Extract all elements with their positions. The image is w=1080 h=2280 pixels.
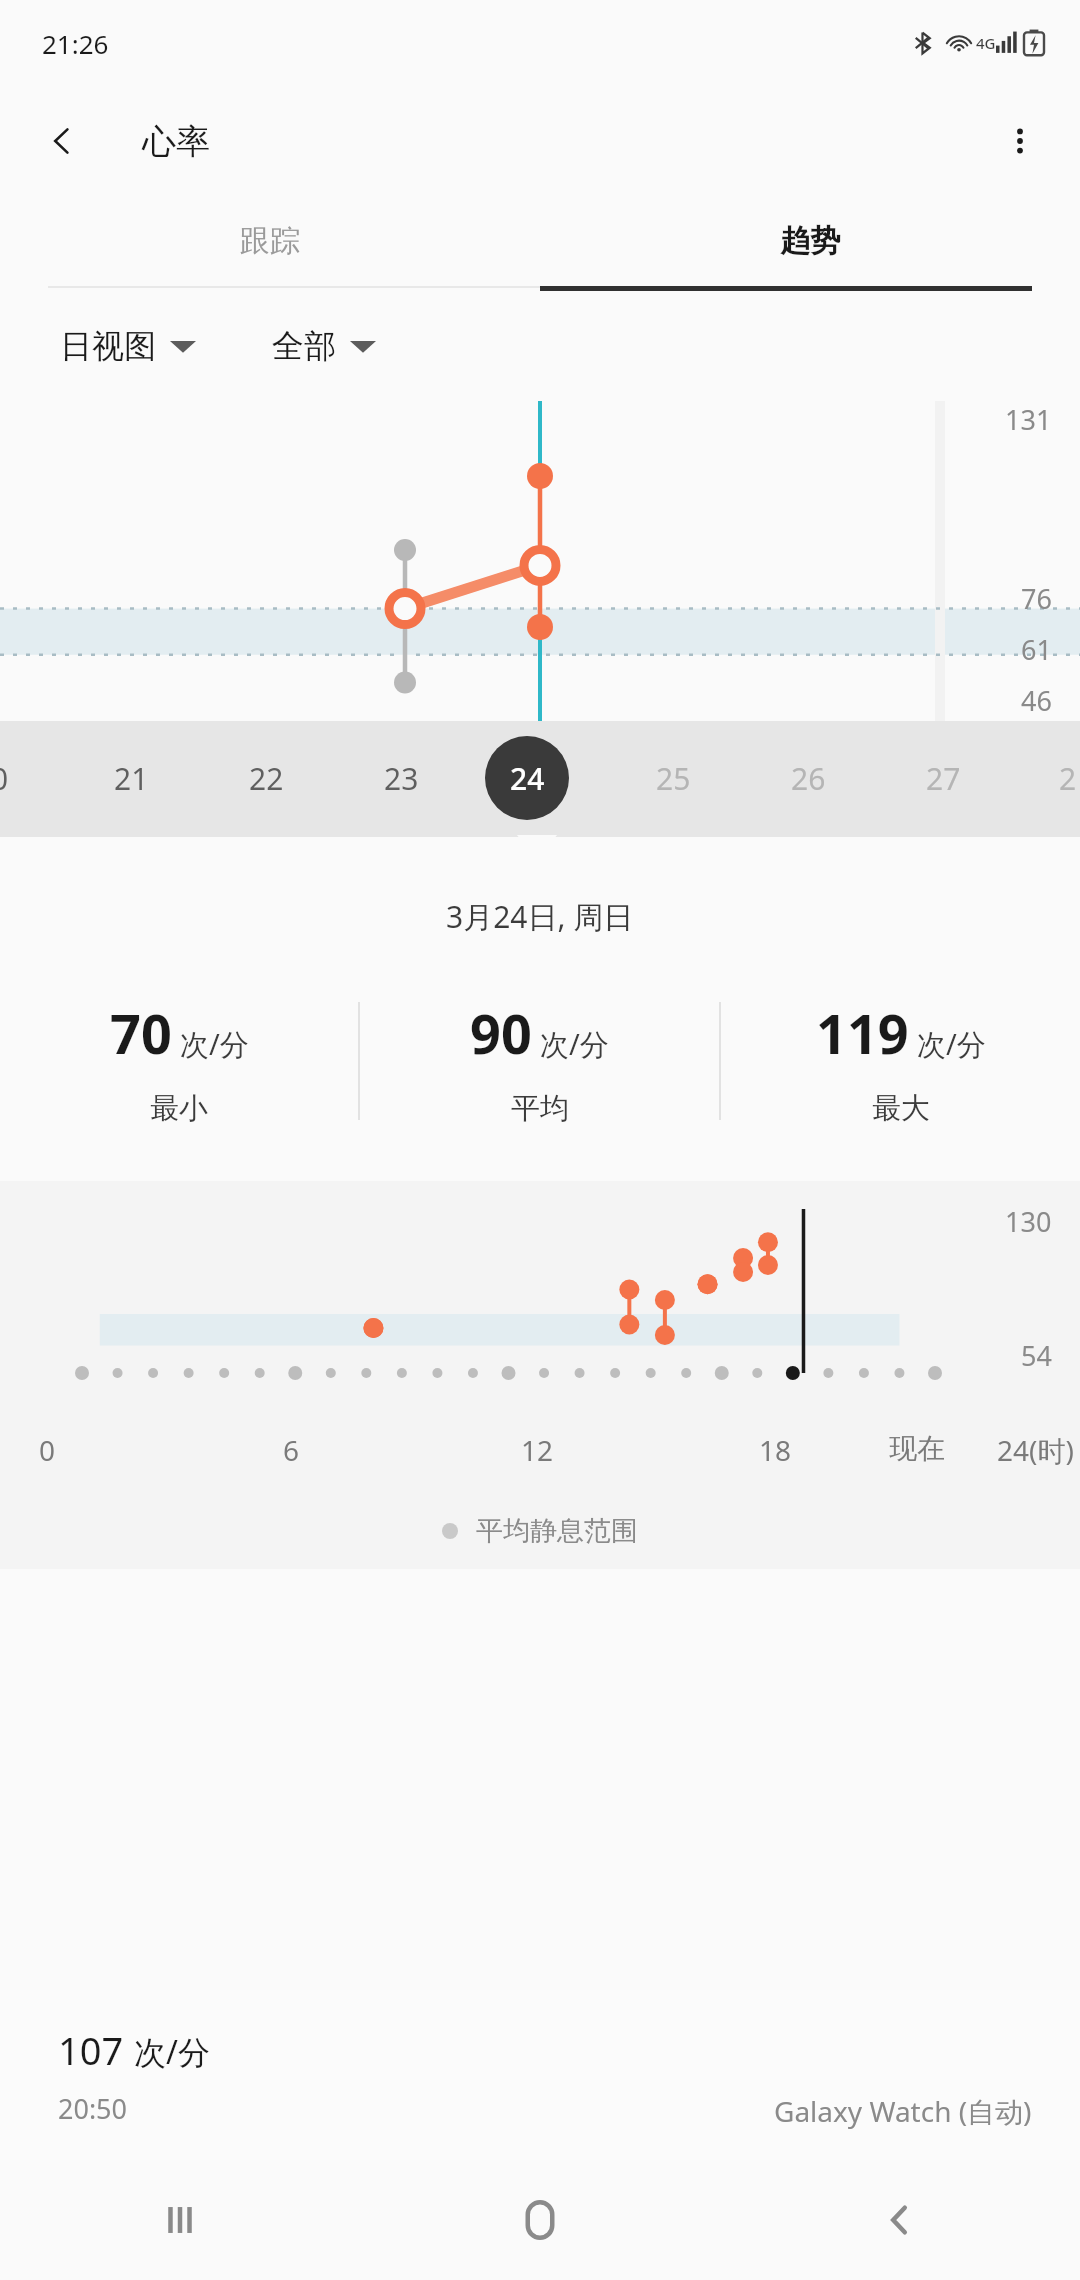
- staticText: 6: [283, 1431, 300, 1469]
- staticText: 次/分: [134, 2030, 210, 2074]
- button[interactable]: 23: [361, 736, 441, 820]
- staticText: 4G: [976, 33, 996, 53]
- button[interactable]: 25: [633, 736, 713, 820]
- button[interactable]: Recents: [0, 2160, 360, 2280]
- staticText: 全部: [272, 326, 336, 366]
- staticText: 46: [1021, 682, 1052, 719]
- staticText: 54: [1021, 1337, 1052, 1374]
- button[interactable]: 全部: [272, 320, 376, 372]
- button[interactable]: Back: [30, 109, 94, 173]
- staticText: 23: [384, 758, 419, 799]
- staticText: 现在: [889, 1431, 945, 1466]
- staticText: 次/分: [917, 1024, 986, 1064]
- staticText: 18: [759, 1431, 792, 1469]
- staticText: 最大: [872, 1090, 930, 1127]
- staticText: 21:26: [42, 26, 109, 61]
- button[interactable]: 2: [1028, 736, 1080, 820]
- staticText: 130: [1005, 1203, 1052, 1240]
- button[interactable]: Home: [360, 2160, 720, 2280]
- staticText: 0: [0, 758, 9, 799]
- staticText: 70: [110, 996, 172, 1070]
- staticText: 次/分: [180, 1024, 249, 1064]
- staticText: 跟踪: [240, 222, 300, 260]
- staticText: 2: [1059, 758, 1077, 799]
- button[interactable]: 26: [768, 736, 848, 820]
- staticText: 131: [1005, 401, 1052, 438]
- staticText: 最小: [150, 1090, 208, 1127]
- staticText: 0: [39, 1431, 56, 1469]
- button[interactable]: More options: [988, 109, 1052, 173]
- button[interactable]: 21: [91, 736, 171, 820]
- staticText: 27: [926, 758, 961, 799]
- button[interactable]: 107: [0, 1990, 1080, 2160]
- staticText: 107: [58, 2024, 124, 2076]
- button[interactable]: 90: [360, 971, 719, 1151]
- button[interactable]: 22: [226, 736, 306, 820]
- staticText: 26: [791, 758, 826, 799]
- button[interactable]: 119: [721, 971, 1080, 1151]
- button[interactable]: 24: [485, 736, 569, 820]
- button[interactable]: 27: [903, 736, 983, 820]
- staticText: 趋势: [780, 222, 840, 260]
- staticText: 3月24日, 周日: [446, 896, 634, 937]
- staticText: Galaxy Watch (自动): [774, 2092, 1032, 2130]
- staticText: 22: [249, 758, 284, 799]
- staticText: 12: [521, 1431, 554, 1469]
- staticText: 61: [1021, 631, 1052, 668]
- staticText: 90: [470, 996, 532, 1070]
- staticText: 119: [816, 996, 909, 1070]
- staticText: 20:50: [58, 2090, 128, 2127]
- staticText: 24: [510, 758, 545, 799]
- staticText: 21: [114, 758, 149, 799]
- staticText: 76: [1021, 580, 1052, 617]
- staticText: 25: [656, 758, 691, 799]
- staticText: 24(时): [997, 1431, 1074, 1469]
- button[interactable]: 0: [0, 736, 40, 820]
- staticText: 平均静息范围: [476, 1514, 638, 1548]
- button[interactable]: Back: [720, 2160, 1080, 2280]
- staticText: 平均: [511, 1090, 569, 1127]
- button[interactable]: 日视图: [60, 320, 196, 372]
- button[interactable]: 趋势: [540, 196, 1080, 286]
- button[interactable]: 70: [0, 971, 358, 1151]
- staticText: 次/分: [540, 1024, 609, 1064]
- button[interactable]: 跟踪: [0, 196, 540, 286]
- staticText: 心率: [142, 120, 210, 163]
- staticText: 日视图: [60, 326, 156, 366]
